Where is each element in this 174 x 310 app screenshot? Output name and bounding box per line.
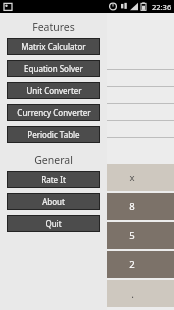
staticText: (x^2)/sin(y) (2, 56, 46, 68)
button[interactable]: sqrt(pi)/0.5! (0, 121, 174, 138)
button[interactable]: cos(x^2) (0, 70, 174, 87)
staticText: Unit Converter (26, 85, 82, 96)
staticText: Currency Converter (17, 107, 91, 118)
staticText: I (44, 171, 48, 184)
button[interactable]: Matrix Calculator (7, 38, 100, 55)
staticText: 5 (129, 229, 135, 242)
staticText: 7 (43, 200, 49, 213)
staticText: Features (32, 20, 75, 34)
staticText: Matrix Calculator (21, 41, 86, 52)
staticText: Quit (45, 218, 62, 229)
staticText: About (42, 196, 65, 207)
staticText: 8 (129, 200, 135, 213)
staticText: sqrt(pi)/0.5! (2, 124, 48, 136)
button[interactable]: Periodic Table (7, 126, 100, 143)
button[interactable]: Quit (7, 215, 100, 232)
button[interactable]: . (90, 280, 174, 307)
button[interactable]: 8 (90, 193, 174, 220)
staticText: x (129, 171, 135, 184)
button[interactable]: Open navigation drawer (4, 18, 30, 42)
button[interactable]: x (90, 164, 174, 191)
button[interactable]: 7 (4, 193, 88, 220)
button[interactable]: Equation Solver (7, 60, 100, 77)
staticText: . (131, 287, 134, 301)
button[interactable]: About (7, 193, 100, 210)
button[interactable]: Rate It (7, 171, 100, 188)
staticText: cos(x^2) (2, 73, 35, 85)
button[interactable]: 5 (90, 222, 174, 249)
button[interactable]: ln(e^4)/x (0, 87, 174, 104)
staticText: 2 (129, 258, 135, 271)
button[interactable]: e^(i×pi) (0, 104, 174, 121)
button[interactable]: Unit Converter (7, 82, 100, 99)
staticText: ln(e^4)/x (2, 90, 37, 102)
staticText: e^(i×pi) (2, 107, 32, 119)
staticText: 22:36 (152, 2, 172, 12)
button[interactable]: 2 (90, 251, 174, 278)
staticText: Equation Solver (24, 63, 83, 74)
button[interactable]: (x^2)/sin(y) (0, 53, 174, 70)
staticText: Rate It (41, 174, 66, 185)
staticText: 4 (43, 229, 49, 242)
button[interactable]: 4 (4, 222, 88, 249)
button[interactable]: I (4, 164, 88, 191)
staticText: Periodic Table (27, 129, 80, 140)
staticText: General (34, 153, 73, 167)
button[interactable]: Currency Converter (7, 104, 100, 121)
